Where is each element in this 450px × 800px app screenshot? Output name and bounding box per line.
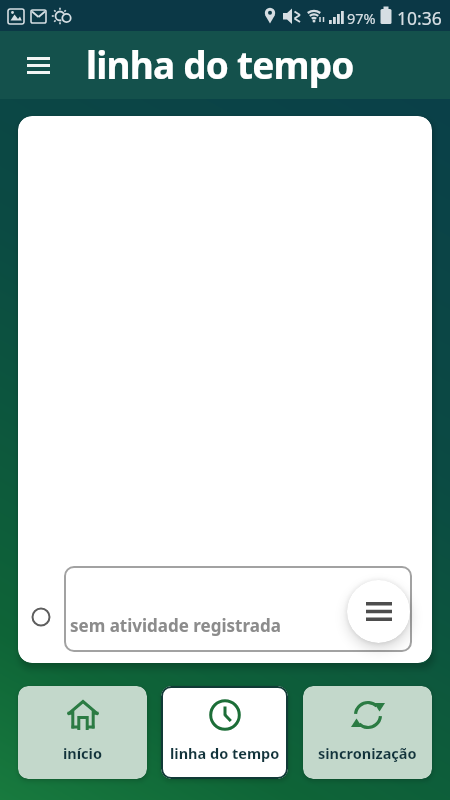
- button[interactable]: [18, 45, 58, 85]
- staticText: 97%: [347, 8, 376, 28]
- staticText: sincronização: [318, 743, 417, 763]
- button[interactable]: linha do tempo: [161, 686, 288, 779]
- staticText: sem atividade registrada: [70, 614, 281, 637]
- button[interactable]: sem atividade registrada: [64, 566, 412, 652]
- button[interactable]: sincronização: [303, 686, 432, 779]
- staticText: início: [63, 743, 102, 763]
- button[interactable]: [347, 580, 410, 643]
- button[interactable]: início: [18, 686, 147, 779]
- staticText: linha do tempo: [86, 39, 354, 89]
- staticText: 10:36: [397, 6, 442, 30]
- staticText: linha do tempo: [170, 743, 280, 763]
